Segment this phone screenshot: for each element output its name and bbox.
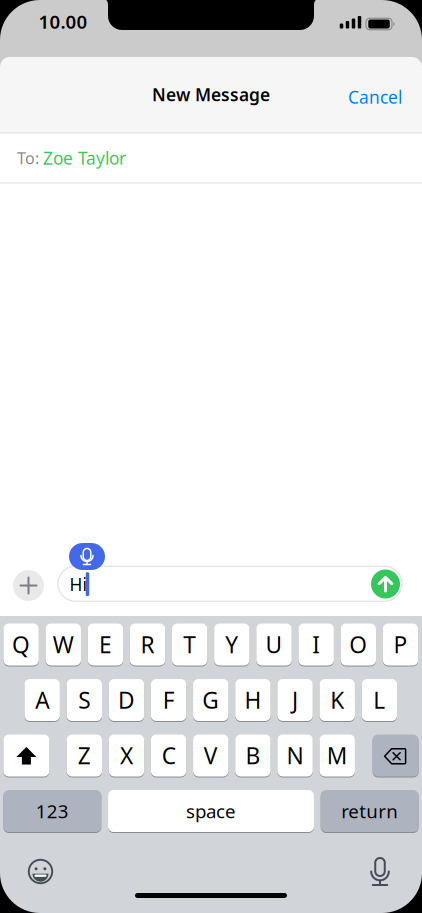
button[interactable]: 123 bbox=[3, 790, 101, 832]
staticText: R bbox=[140, 629, 154, 659]
button[interactable]: O bbox=[341, 623, 376, 665]
button[interactable]: space bbox=[108, 790, 314, 832]
staticText: J bbox=[292, 685, 298, 715]
button[interactable]: Delete bbox=[373, 734, 419, 776]
button[interactable]: T bbox=[172, 623, 207, 665]
button[interactable]: M bbox=[319, 734, 355, 776]
staticText: P bbox=[393, 629, 407, 659]
button[interactable]: W bbox=[45, 623, 81, 665]
button[interactable]: L bbox=[362, 679, 397, 721]
staticText: I bbox=[312, 629, 320, 659]
button[interactable]: I bbox=[298, 623, 334, 665]
button[interactable]: R bbox=[130, 623, 165, 665]
staticText: K bbox=[330, 685, 344, 715]
button[interactable]: S bbox=[67, 679, 102, 721]
staticText: Y bbox=[225, 629, 238, 659]
staticText: N bbox=[287, 740, 304, 770]
button[interactable]: Send bbox=[371, 569, 400, 598]
button[interactable]: D bbox=[109, 679, 144, 721]
button[interactable]: Shift bbox=[3, 734, 49, 776]
staticText: E bbox=[99, 629, 112, 659]
staticText: H bbox=[244, 685, 261, 715]
button[interactable]: Dictation bbox=[365, 854, 395, 888]
button[interactable]: return bbox=[321, 790, 419, 832]
staticText: A bbox=[35, 685, 49, 715]
staticText: To: bbox=[17, 147, 39, 169]
staticText: Q bbox=[12, 629, 30, 659]
button[interactable]: P bbox=[383, 623, 418, 665]
staticText: Hi bbox=[69, 573, 86, 596]
button[interactable]: X bbox=[109, 734, 144, 776]
staticText: C bbox=[162, 740, 176, 770]
staticText: 10.00 bbox=[38, 9, 87, 34]
button[interactable]: B bbox=[235, 734, 271, 776]
button[interactable]: K bbox=[319, 679, 355, 721]
button[interactable]: U bbox=[256, 623, 292, 665]
staticText: Cancel bbox=[348, 85, 402, 108]
button[interactable]: Add attachment bbox=[13, 570, 44, 601]
staticText: New Message bbox=[152, 83, 270, 106]
button[interactable]: F bbox=[151, 679, 186, 721]
button[interactable]: Q bbox=[3, 623, 39, 665]
button[interactable]: C bbox=[151, 734, 186, 776]
button[interactable]: E bbox=[88, 623, 123, 665]
staticText: S bbox=[78, 685, 90, 715]
staticText: V bbox=[204, 740, 218, 770]
staticText: T bbox=[183, 629, 196, 659]
staticText: W bbox=[53, 629, 74, 659]
staticText: return bbox=[341, 799, 398, 823]
button[interactable]: G bbox=[193, 679, 228, 721]
button[interactable]: Z bbox=[67, 734, 102, 776]
staticText: F bbox=[163, 685, 175, 715]
staticText: O bbox=[349, 629, 367, 659]
button[interactable]: Y bbox=[214, 623, 250, 665]
staticText: 123 bbox=[36, 799, 69, 823]
button[interactable]: J bbox=[277, 679, 313, 721]
staticText: G bbox=[202, 685, 219, 715]
button[interactable]: Message field bbox=[58, 566, 402, 601]
staticText: Zoe Taylor bbox=[43, 146, 126, 169]
staticText: L bbox=[373, 685, 385, 715]
staticText: M bbox=[327, 740, 348, 770]
staticText: X bbox=[120, 740, 133, 770]
staticText: Z bbox=[78, 740, 91, 770]
staticText: B bbox=[245, 740, 260, 770]
button[interactable]: A bbox=[24, 679, 60, 721]
button[interactable]: Dictate bbox=[69, 543, 105, 570]
button[interactable]: V bbox=[193, 734, 228, 776]
button[interactable]: Cancel bbox=[348, 85, 402, 108]
staticText: space bbox=[186, 799, 236, 823]
button[interactable]: Zoe Taylor bbox=[43, 146, 126, 169]
staticText: U bbox=[265, 629, 282, 659]
button[interactable]: Emoji bbox=[25, 856, 55, 886]
button[interactable]: H bbox=[235, 679, 271, 721]
staticText: D bbox=[118, 685, 135, 715]
button[interactable]: N bbox=[277, 734, 313, 776]
